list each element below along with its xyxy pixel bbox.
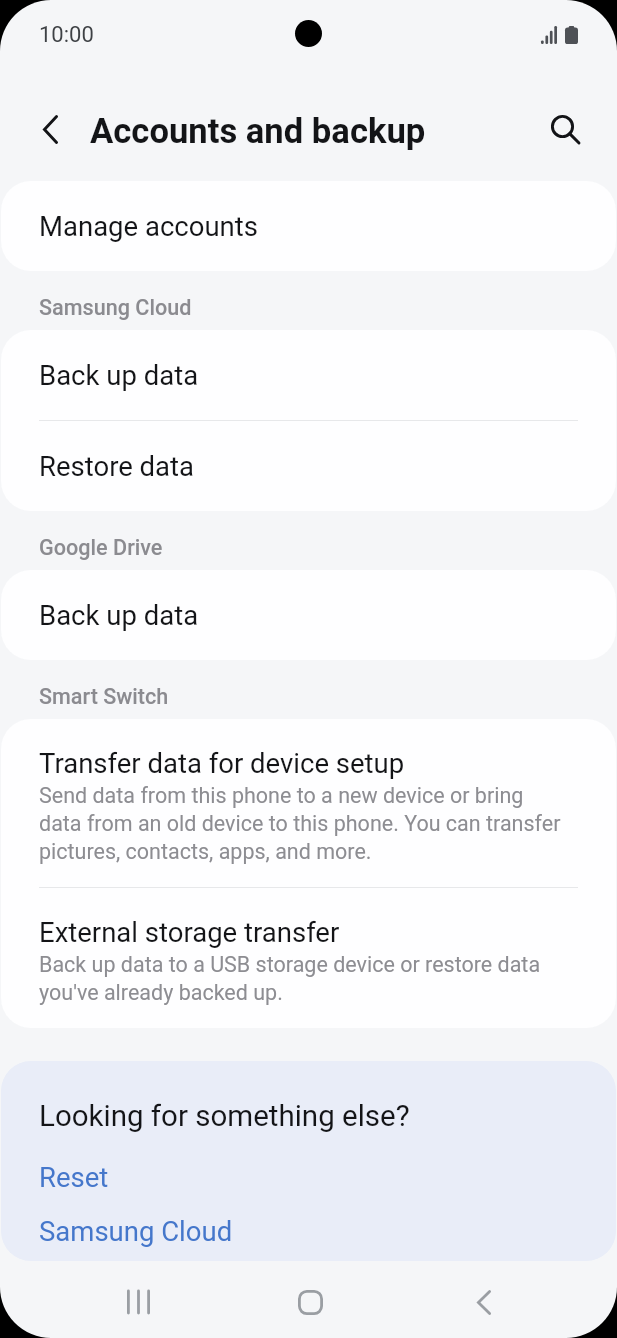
staticText: 10:00 (39, 22, 94, 48)
staticText: Send data from this phone to a new devic… (39, 781, 561, 865)
button[interactable]: Search (541, 105, 589, 153)
button[interactable]: Reset (39, 1161, 109, 1193)
staticText: Back up data to a USB storage device or … (39, 950, 541, 1006)
button[interactable]: Samsung Cloud (39, 1215, 233, 1247)
staticText: Transfer data for device setup (39, 747, 405, 779)
staticText: Back up data (39, 359, 199, 391)
staticText: Manage accounts (39, 210, 258, 242)
button[interactable]: Home (274, 1266, 346, 1338)
button[interactable]: Restore data (1, 421, 616, 511)
button[interactable]: External storage transfer (1, 888, 616, 1028)
button[interactable]: Transfer data for device setup (1, 719, 616, 887)
button[interactable]: Manage accounts (1, 181, 616, 271)
staticText: Looking for something else? (39, 1099, 410, 1134)
staticText: Accounts and backup (90, 111, 426, 152)
button[interactable]: Back (448, 1266, 520, 1338)
staticText: Restore data (39, 450, 195, 482)
staticText: Samsung Cloud (39, 295, 192, 320)
button[interactable]: Back up data (1, 330, 616, 420)
staticText: Back up data (39, 599, 199, 631)
staticText: External storage transfer (39, 916, 340, 948)
button[interactable]: Navigate up (26, 105, 74, 153)
button[interactable]: Recent apps (102, 1266, 174, 1338)
staticText: Smart Switch (39, 684, 169, 709)
button[interactable]: Back up data (1, 570, 616, 660)
staticText: Google Drive (39, 535, 163, 560)
